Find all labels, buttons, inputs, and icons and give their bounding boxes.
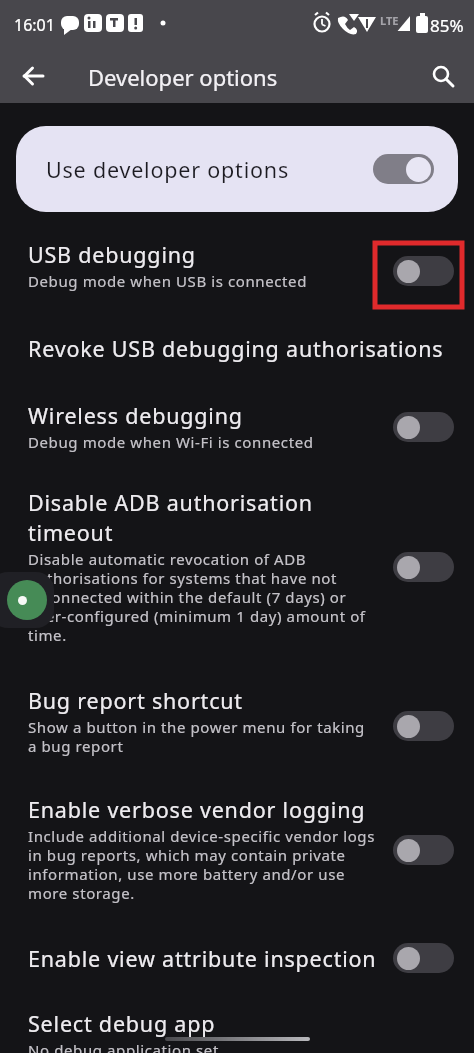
button[interactable] (7, 580, 47, 620)
button[interactable]: Use developer options (16, 126, 458, 212)
button[interactable] (16, 59, 52, 95)
button[interactable]: Enable verbose vendor logging (0, 777, 474, 924)
staticText: Debug mode when Wi-Fi is connected (28, 432, 314, 452)
staticText: Wireless debugging (28, 401, 243, 430)
staticText: Show a button in the power menu for taki… (28, 717, 365, 757)
staticText: LTE (380, 13, 399, 28)
staticText: Select debug app (28, 1009, 216, 1038)
button[interactable]: Revoke USB debugging authorisations (0, 311, 474, 383)
button[interactable]: Select debug app (0, 993, 474, 1053)
staticText: Disable ADB authorisation timeout (28, 488, 313, 547)
button[interactable] (424, 57, 464, 97)
staticText: 85% (430, 14, 464, 37)
button[interactable]: USB debugging (0, 212, 474, 311)
staticText: 16:01 (14, 14, 55, 36)
staticText: Revoke USB debugging authorisations (28, 334, 444, 363)
staticText: Debug mode when USB is connected (28, 271, 307, 291)
staticText: No debug application set (28, 1040, 219, 1053)
staticText: Include additional device-specific vendo… (28, 826, 375, 904)
button[interactable]: Disable ADB authorisation timeout (0, 472, 474, 666)
staticText: Disable automatic revocation of ADB auth… (28, 549, 366, 646)
staticText: Bug report shortcut (28, 686, 243, 715)
button[interactable]: Bug report shortcut (0, 666, 474, 777)
staticText: Use developer options (46, 155, 373, 184)
button[interactable]: Enable view attribute inspection (0, 924, 474, 993)
staticText: Enable verbose vendor logging (28, 795, 366, 824)
button[interactable]: Wireless debugging (0, 383, 474, 472)
staticText: USB debugging (28, 240, 196, 269)
staticText: Developer options (88, 62, 278, 92)
staticText: Enable view attribute inspection (28, 944, 377, 973)
